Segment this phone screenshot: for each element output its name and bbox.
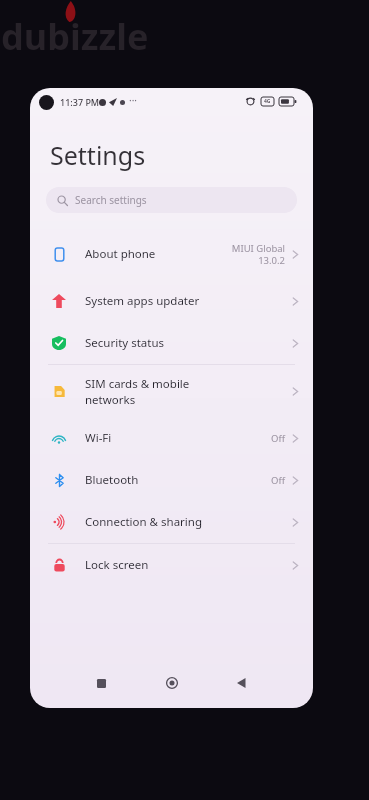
staticText: MIUI Global 13.0.2 [231, 242, 285, 267]
staticText: Wi-Fi [85, 430, 271, 446]
staticText: SIM cards & mobile networks [85, 376, 292, 407]
staticText: System apps updater [85, 293, 292, 309]
button[interactable]: Search settings [46, 187, 297, 213]
staticText: Security status [85, 335, 292, 351]
button[interactable]: Wi-Fi [30, 417, 313, 459]
staticText: Off [271, 474, 285, 487]
staticText: 11:37 PM [60, 96, 100, 108]
staticText: Lock screen [85, 557, 292, 573]
button[interactable]: SIM cards & mobile networks [30, 365, 313, 417]
button[interactable]: Home [159, 670, 185, 696]
staticText: Bluetooth [85, 472, 271, 488]
staticText: Off [271, 432, 285, 445]
staticText: Search settings [75, 193, 147, 207]
staticText: dubizzle [1, 12, 149, 61]
staticText: Connection & sharing [85, 514, 292, 530]
staticText: ··· [129, 93, 138, 107]
button[interactable]: Bluetooth [30, 459, 313, 501]
button[interactable]: System apps updater [30, 280, 313, 322]
staticText: Settings [50, 138, 146, 172]
staticText: 4G [264, 98, 271, 105]
button[interactable]: Lock screen [30, 544, 313, 586]
button[interactable]: Connection & sharing [30, 501, 313, 543]
button[interactable]: About phone [30, 228, 313, 280]
button[interactable]: Recent apps [88, 670, 114, 696]
button[interactable]: Security status [30, 322, 313, 364]
staticText: About phone [85, 246, 231, 262]
button[interactable]: Back [229, 670, 255, 696]
